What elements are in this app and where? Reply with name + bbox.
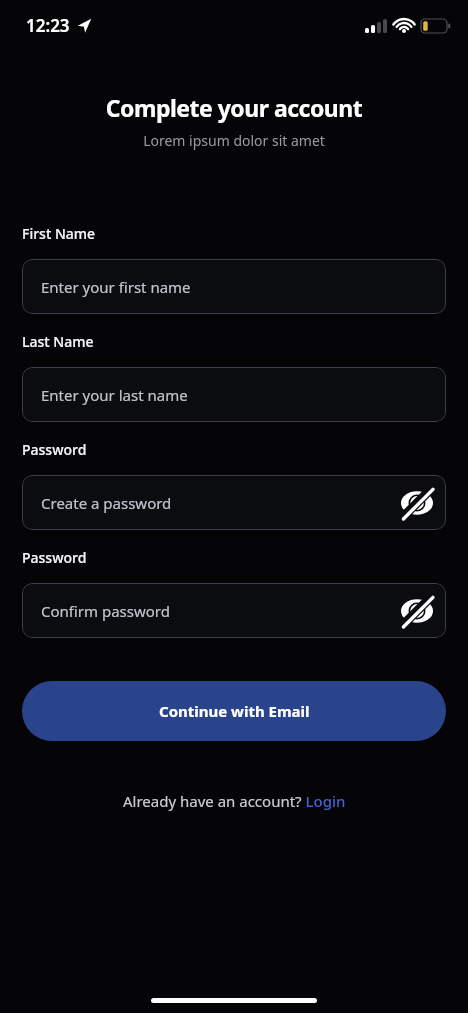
staticText: First Name	[22, 224, 96, 243]
staticText: Already have an account? Login	[123, 791, 346, 811]
staticText: Enter your first name	[41, 277, 191, 297]
staticText: Enter your last name	[41, 385, 188, 405]
button[interactable]: Enter your first name	[22, 259, 446, 314]
button[interactable]: Already have an account? Login	[0, 791, 468, 811]
staticText: Confirm password	[41, 601, 170, 621]
staticText: Password	[22, 440, 87, 459]
staticText: Continue with Email	[159, 701, 310, 721]
button[interactable]: Continue with Email	[22, 681, 446, 741]
button[interactable]: Create a password	[22, 475, 446, 530]
staticText: Lorem ipsum dolor sit amet	[0, 131, 468, 150]
staticText: Password	[22, 548, 87, 567]
staticText: Create a password	[41, 493, 172, 513]
staticText: Last Name	[22, 332, 94, 351]
button[interactable]: Confirm password	[22, 583, 446, 638]
button[interactable]: Enter your last name	[22, 367, 446, 422]
staticText: 12:23	[26, 14, 70, 37]
staticText: Complete your account	[0, 92, 468, 123]
